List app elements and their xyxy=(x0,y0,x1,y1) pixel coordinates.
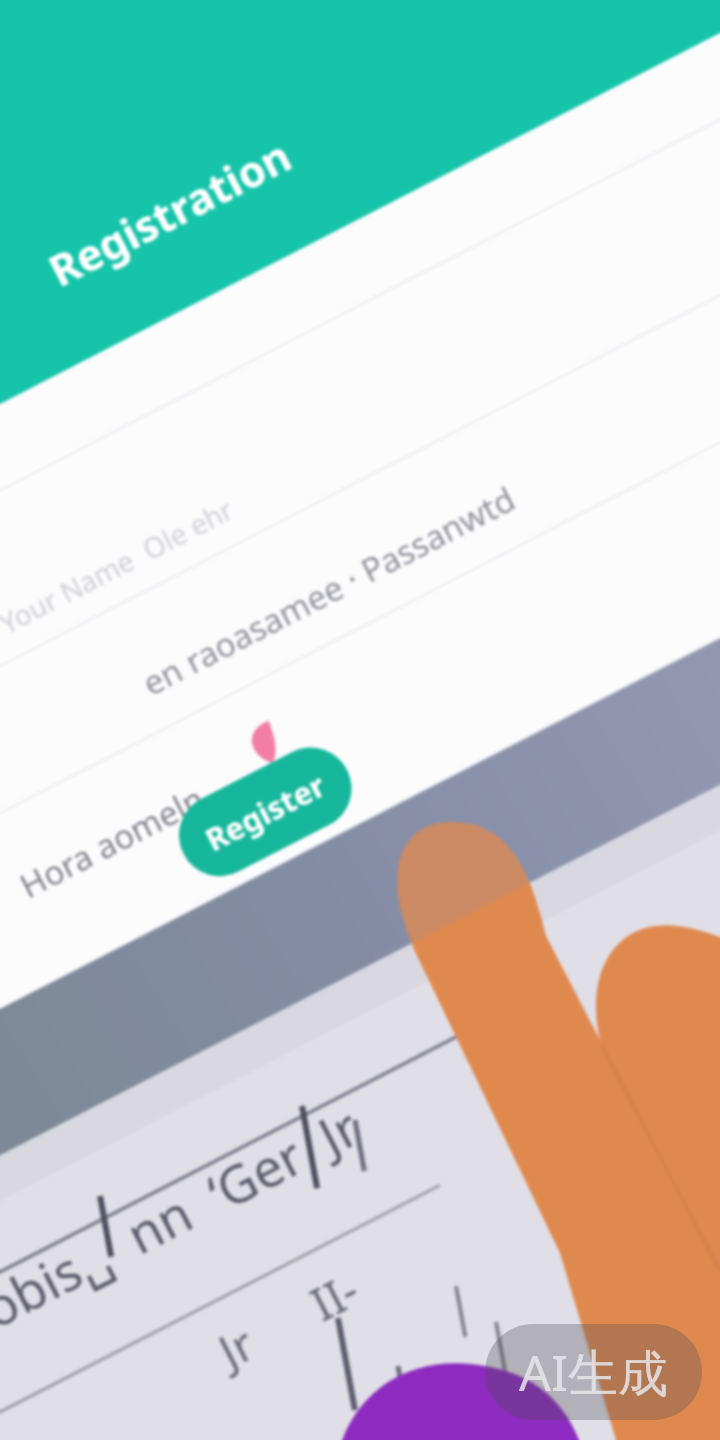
staticText: Registration xyxy=(38,126,301,299)
button[interactable]: Register xyxy=(165,733,366,890)
staticText: obis␣ nn ʻGer Jr xyxy=(0,1090,370,1343)
staticText: Jr ΙΙ- xyxy=(208,1258,370,1382)
staticText: AI生成 xyxy=(519,1338,668,1406)
staticText: en raoasamee · Passanwtd xyxy=(135,476,523,705)
staticText: Register xyxy=(198,763,333,860)
staticText: Hora aomeln xyxy=(12,776,212,908)
staticText: Your Name Ole ehr xyxy=(0,490,239,642)
